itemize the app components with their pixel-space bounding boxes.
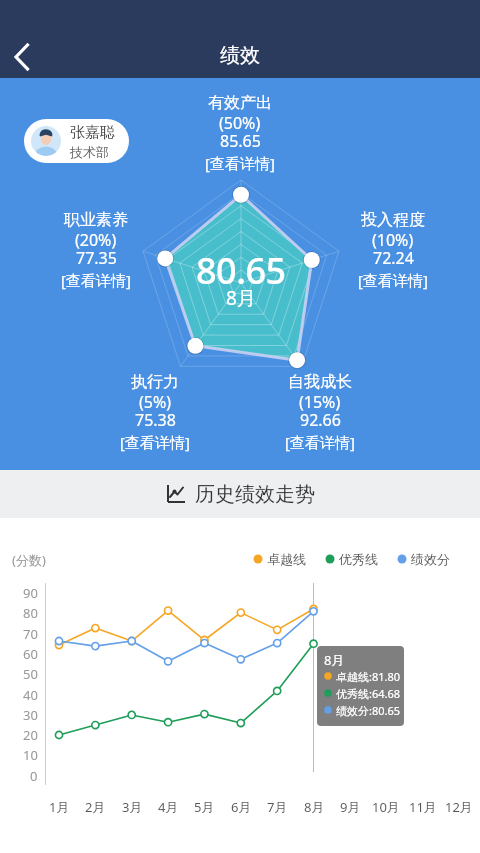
staticText: 历史绩效走势 <box>195 482 315 507</box>
button[interactable]: 自我成长 <box>245 372 395 454</box>
staticText: 优秀线 <box>339 551 378 567</box>
staticText: 绩效 <box>220 43 260 68</box>
staticText: 卓越线 <box>267 551 306 567</box>
staticText: 40 <box>23 686 38 704</box>
staticText: 1月 <box>49 798 70 816</box>
button[interactable]: 职业素养 <box>21 210 171 292</box>
staticText: (5%) <box>139 391 172 413</box>
staticText: 卓越线:81.80 <box>336 669 401 684</box>
staticText: 70 <box>23 625 38 643</box>
staticText: 77.35 <box>76 247 117 269</box>
staticText: 8月 <box>226 285 256 311</box>
staticText: 5月 <box>194 798 215 816</box>
staticText: 绩效分:80.65 <box>336 703 401 718</box>
staticText: 20 <box>23 726 38 744</box>
staticText: 80.65 <box>196 246 286 295</box>
staticText: (分数) <box>12 551 46 569</box>
staticText: [查看详情] <box>61 270 131 290</box>
staticText: 执行力 <box>131 372 179 392</box>
staticText: 投入程度 <box>361 210 425 230</box>
button[interactable]: 投入程度 <box>318 210 468 292</box>
staticText: 60 <box>23 645 38 663</box>
staticText: 10 <box>23 746 38 764</box>
button[interactable]: 有效产出 <box>165 93 315 175</box>
staticText: 30 <box>23 706 38 724</box>
staticText: [查看详情] <box>358 270 428 290</box>
button[interactable] <box>0 30 44 78</box>
staticText: [查看详情] <box>120 432 190 452</box>
staticText: 优秀线:64.68 <box>336 686 401 701</box>
staticText: 2月 <box>85 798 106 816</box>
staticText: (10%) <box>372 229 414 251</box>
staticText: 6月 <box>231 798 252 816</box>
staticText: (15%) <box>299 391 341 413</box>
staticText: 50 <box>23 665 38 683</box>
staticText: 92.66 <box>300 409 341 431</box>
staticText: 80 <box>23 604 38 622</box>
staticText: [查看详情] <box>285 432 355 452</box>
staticText: 3月 <box>122 798 143 816</box>
staticText: 有效产出 <box>208 93 272 113</box>
staticText: (20%) <box>75 229 117 251</box>
button[interactable]: 执行力 <box>80 372 230 454</box>
staticText: 8月 <box>304 798 325 816</box>
staticText: 4月 <box>158 798 179 816</box>
staticText: 90 <box>23 584 38 602</box>
staticText: (50%) <box>219 112 261 134</box>
button[interactable]: 历史绩效走势 <box>0 470 480 518</box>
staticText: 85.65 <box>220 130 261 152</box>
staticText: 9月 <box>340 798 361 816</box>
staticText: 7月 <box>267 798 288 816</box>
staticText: 自我成长 <box>288 372 352 392</box>
staticText: 张嘉聪 <box>70 123 115 142</box>
staticText: 11月 <box>409 798 437 816</box>
staticText: 10月 <box>372 798 400 816</box>
staticText: 72.24 <box>373 247 414 269</box>
staticText: 绩效分 <box>411 551 450 567</box>
staticText: 12月 <box>445 798 473 816</box>
button[interactable]: 张嘉聪 <box>31 119 115 163</box>
staticText: 职业素养 <box>64 210 128 230</box>
staticText: [查看详情] <box>205 153 275 173</box>
staticText: 0 <box>30 767 38 785</box>
staticText: 75.38 <box>135 409 176 431</box>
staticText: 技术部 <box>70 144 109 160</box>
staticText: 8月 <box>324 651 345 669</box>
